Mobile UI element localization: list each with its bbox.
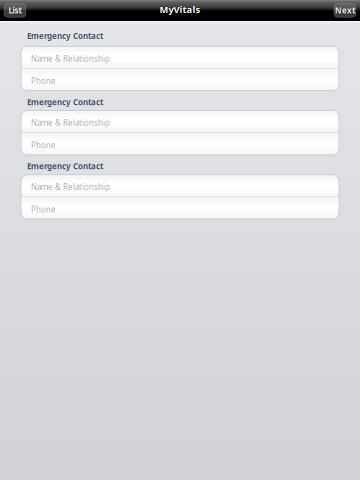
staticText: Emergency Contact [27,30,103,41]
button[interactable]: Name & Relationship [21,46,339,68]
button[interactable]: Phone [21,133,339,155]
staticText: Phone [31,76,56,86]
staticText: Phone [31,204,56,215]
staticText: MyVitals [159,3,200,16]
button[interactable]: Name & Relationship [21,175,339,197]
button[interactable]: Next [334,4,356,17]
staticText: List [8,5,21,16]
button[interactable]: Phone [21,69,339,90]
button[interactable]: Phone [21,197,339,219]
staticText: Phone [31,140,56,150]
button[interactable]: Name & Relationship [21,110,339,132]
staticText: Emergency Contact [27,161,103,171]
staticText: Name & Relationship [31,53,110,64]
staticText: Name & Relationship [31,117,110,128]
button[interactable]: List [4,4,26,17]
staticText: Name & Relationship [31,182,110,192]
staticText: Next [335,5,355,16]
staticText: Emergency Contact [27,97,103,107]
